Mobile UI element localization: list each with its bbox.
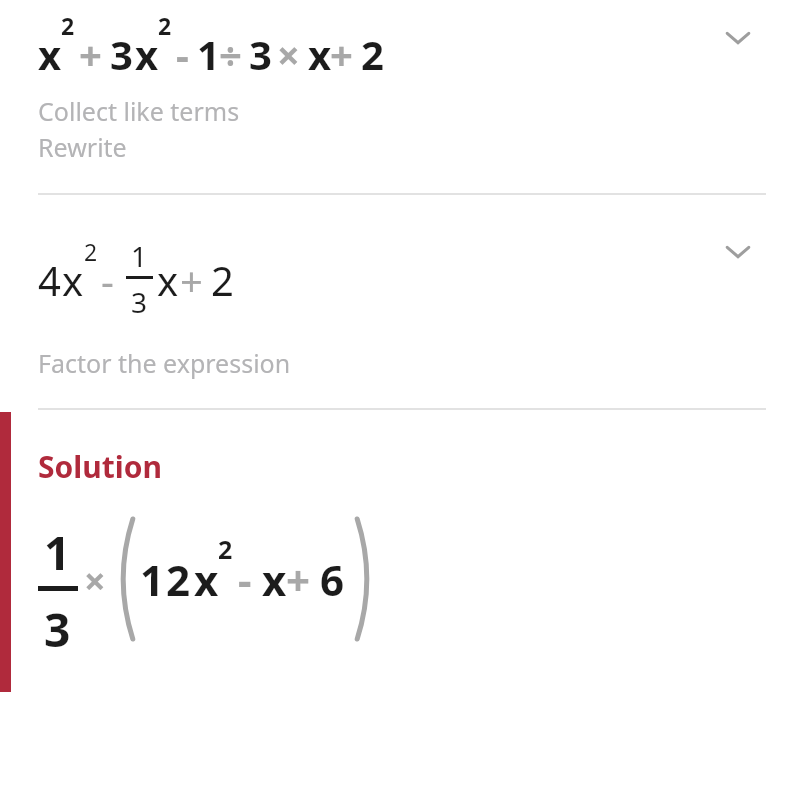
- staticText: 2: [218, 532, 233, 566]
- button[interactable]: Solution: [30, 440, 230, 488]
- staticText: 1: [131, 237, 148, 275]
- staticText: +: [330, 27, 353, 81]
- staticText: 1: [44, 521, 71, 584]
- staticText: -: [176, 27, 189, 81]
- staticText: 4: [38, 253, 61, 307]
- staticText: 2: [361, 27, 384, 81]
- staticText: 1: [140, 551, 165, 608]
- staticText: Factor the expression: [38, 346, 291, 380]
- staticText: x: [135, 27, 159, 81]
- staticText: ×: [84, 554, 106, 606]
- staticText: 3: [110, 27, 133, 81]
- staticText: 3: [249, 27, 272, 81]
- staticText: 6: [320, 551, 345, 608]
- staticText: x: [194, 551, 219, 608]
- staticText: 2: [61, 10, 75, 41]
- staticText: 3: [131, 283, 148, 321]
- staticText: x: [38, 27, 62, 81]
- staticText: 2: [158, 10, 172, 41]
- button[interactable]: Expand step 1: [712, 16, 764, 60]
- staticText: Rewrite: [38, 130, 127, 164]
- staticText: 3: [44, 598, 71, 661]
- staticText: +: [79, 27, 102, 81]
- staticText: 2: [211, 253, 234, 307]
- staticText: +: [286, 551, 311, 608]
- staticText: -: [238, 551, 252, 608]
- staticText: 2: [84, 236, 98, 267]
- staticText: ×: [277, 27, 300, 81]
- staticText: 2: [166, 551, 191, 608]
- staticText: +: [180, 253, 203, 307]
- staticText: x: [157, 253, 179, 307]
- staticText: x: [62, 253, 84, 307]
- staticText: x: [262, 551, 287, 608]
- staticText: Collect like terms: [38, 94, 240, 128]
- staticText: Solution: [38, 446, 162, 487]
- staticText: -: [101, 253, 114, 307]
- staticText: ÷: [219, 27, 242, 81]
- staticText: x: [308, 27, 332, 81]
- staticText: 1: [197, 27, 220, 81]
- button[interactable]: Expand step 2: [712, 230, 764, 274]
